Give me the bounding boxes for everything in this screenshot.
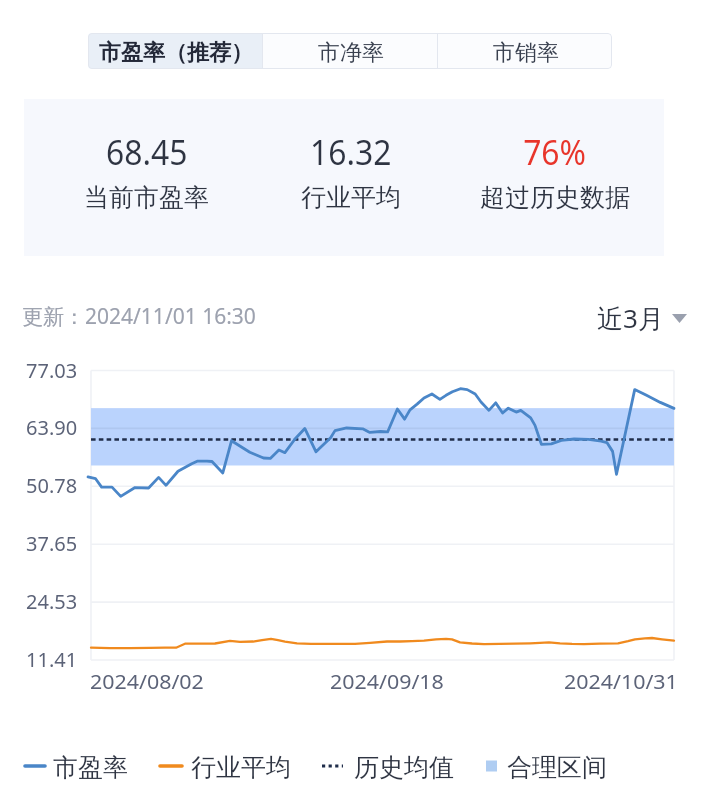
- button[interactable]: 市净率: [263, 33, 437, 69]
- staticText: 市盈率: [53, 752, 128, 783]
- staticText: 11.41: [26, 646, 78, 673]
- staticText: 近3月: [597, 300, 664, 336]
- staticText: 市销率: [493, 39, 559, 67]
- staticText: 16.32: [310, 128, 392, 176]
- staticText: 76%: [523, 128, 587, 176]
- button[interactable]: 近3月: [597, 300, 687, 336]
- button[interactable]: 市盈率: [19, 750, 131, 782]
- staticText: 50.78: [26, 472, 78, 499]
- staticText: 合理区间: [507, 752, 607, 783]
- staticText: 24.53: [26, 588, 78, 615]
- staticText: 63.90: [26, 414, 78, 441]
- staticText: 2024/09/18: [330, 668, 444, 695]
- button[interactable]: 历史均值: [315, 750, 456, 782]
- staticText: 37.65: [26, 530, 78, 557]
- staticText: 行业平均: [301, 182, 401, 213]
- staticText: 行业平均: [191, 752, 291, 783]
- staticText: 市净率: [318, 39, 384, 67]
- staticText: 更新：2024/11/01 16:30: [22, 302, 256, 331]
- button[interactable]: 合理区间: [480, 750, 609, 782]
- button[interactable]: 76%: [445, 128, 665, 213]
- staticText: 当前市盈率: [84, 182, 209, 213]
- staticText: 2024/08/02: [90, 668, 204, 695]
- staticText: 超过历史数据: [480, 182, 630, 213]
- button[interactable]: 68.45: [36, 128, 256, 213]
- button[interactable]: 16.32: [241, 128, 461, 213]
- button[interactable]: 市销率: [438, 33, 612, 69]
- button[interactable]: 行业平均: [154, 750, 293, 782]
- staticText: 2024/10/31: [564, 668, 678, 695]
- staticText: 77.03: [26, 357, 78, 384]
- button[interactable]: 市盈率（推荐）: [88, 33, 262, 69]
- staticText: 市盈率（推荐）: [99, 39, 253, 67]
- other: 选择时间范围: [672, 314, 687, 323]
- staticText: 历史均值: [354, 752, 454, 783]
- staticText: 68.45: [106, 128, 188, 176]
